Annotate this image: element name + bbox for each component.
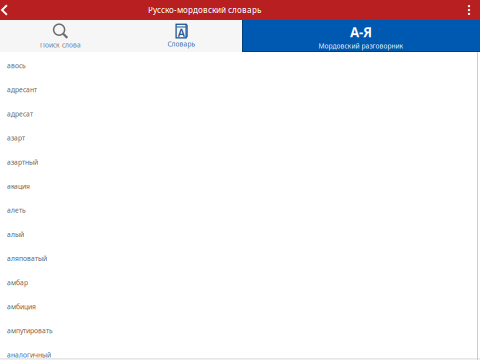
button[interactable]: азартный	[0, 150, 480, 174]
staticText: A	[178, 25, 185, 40]
staticText: авось	[7, 61, 26, 70]
button[interactable]: адресат	[0, 102, 480, 126]
staticText: аналогичный	[7, 350, 51, 359]
staticText: адресант	[7, 85, 37, 94]
button[interactable]: аналогичный	[0, 343, 480, 360]
staticText: А-Я	[350, 23, 372, 41]
button[interactable]: Back	[0, 0, 16, 20]
button[interactable]: А-Я	[242, 20, 480, 52]
staticText: амбар	[7, 278, 28, 287]
staticText: Мордовский разговорник	[318, 41, 403, 50]
staticText: алый	[7, 230, 24, 239]
staticText: ампутировать	[7, 326, 53, 335]
staticText: азарт	[7, 133, 25, 142]
button[interactable]: алый	[0, 222, 480, 246]
staticText: амбиция	[7, 302, 36, 311]
button[interactable]: ампутировать	[0, 319, 480, 343]
staticText: алеть	[7, 206, 26, 215]
button[interactable]: авось	[0, 54, 480, 78]
button[interactable]: акация	[0, 174, 480, 198]
button[interactable]: амбиция	[0, 295, 480, 319]
staticText: аляповатый	[7, 254, 47, 263]
staticText: Поиск слова	[40, 41, 81, 49]
button[interactable]: More options	[458, 0, 480, 20]
button[interactable]: Поиск слова	[0, 20, 121, 52]
staticText: азартный	[7, 158, 38, 166]
button[interactable]: адресант	[0, 78, 480, 102]
button[interactable]: алеть	[0, 198, 480, 222]
button[interactable]: амбар	[0, 270, 480, 295]
staticText: Русско-мордовский словарь	[148, 5, 261, 15]
button[interactable]: A	[121, 20, 242, 52]
staticText: акация	[7, 182, 30, 191]
button[interactable]: азарт	[0, 126, 480, 150]
button[interactable]: аляповатый	[0, 246, 480, 270]
staticText: адресат	[7, 109, 33, 118]
staticText: Словарь	[167, 40, 195, 48]
